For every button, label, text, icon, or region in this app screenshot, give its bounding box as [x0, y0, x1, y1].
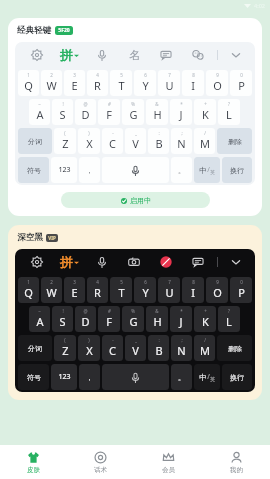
button[interactable]: +: [194, 99, 216, 125]
button[interactable]: 中: [194, 364, 220, 390]
button[interactable]: 7: [158, 277, 180, 303]
button[interactable]: &: [146, 306, 168, 332]
button[interactable]: 删除: [217, 335, 252, 361]
staticText: A: [36, 314, 44, 329]
button[interactable]: 中: [194, 157, 220, 183]
button[interactable]: Voice input: [86, 249, 118, 275]
button[interactable]: %: [122, 306, 144, 332]
button[interactable]: 。: [171, 364, 192, 390]
button[interactable]: ~: [29, 99, 50, 125]
button[interactable]: 我的: [202, 445, 270, 479]
button[interactable]: 8: [182, 277, 204, 303]
button[interactable]: 4: [87, 70, 108, 96]
button[interactable]: 5: [110, 277, 132, 303]
button[interactable]: (: [54, 128, 76, 154]
button[interactable]: ?: [218, 306, 240, 332]
button[interactable]: -: [102, 335, 123, 361]
button[interactable]: 4: [87, 277, 108, 303]
button[interactable]: 话术: [67, 445, 134, 479]
staticText: Y: [142, 78, 149, 93]
button[interactable]: 1: [18, 70, 39, 96]
button[interactable]: 1: [18, 277, 39, 303]
button[interactable]: #: [98, 99, 120, 125]
button[interactable]: ，: [79, 364, 100, 390]
button[interactable]: Handwriting: [118, 42, 150, 68]
button[interactable]: 换行: [222, 364, 252, 390]
button[interactable]: 。: [171, 157, 192, 183]
button[interactable]: Messages: [150, 42, 182, 68]
button[interactable]: ): [78, 128, 100, 154]
button[interactable]: 2: [41, 70, 62, 96]
button[interactable]: @: [75, 306, 96, 332]
button[interactable]: 删除: [217, 128, 252, 154]
button[interactable]: 3: [64, 277, 85, 303]
button[interactable]: 会员: [134, 445, 202, 479]
staticText: /: [204, 130, 206, 136]
button[interactable]: /: [194, 128, 215, 154]
button[interactable]: ?: [218, 99, 240, 125]
button[interactable]: 分词: [18, 335, 52, 361]
button[interactable]: 8: [182, 70, 204, 96]
button[interactable]: -: [102, 128, 123, 154]
button[interactable]: 123: [51, 157, 77, 183]
button[interactable]: *: [170, 99, 192, 125]
button[interactable]: &: [146, 99, 168, 125]
button[interactable]: #: [98, 306, 120, 332]
button[interactable]: _: [125, 335, 146, 361]
button[interactable]: 9: [206, 277, 228, 303]
staticText: ~: [38, 101, 41, 107]
button[interactable]: 分词: [18, 128, 52, 154]
button[interactable]: 皮肤: [0, 445, 67, 479]
button[interactable]: !: [52, 306, 73, 332]
button[interactable]: 6: [134, 70, 156, 96]
button[interactable]: ~: [29, 306, 50, 332]
button[interactable]: *: [170, 306, 192, 332]
button[interactable]: 2: [41, 277, 62, 303]
button[interactable]: 经典轻键: [8, 18, 262, 216]
button[interactable]: 123: [51, 364, 77, 390]
staticText: N: [177, 136, 186, 151]
button[interactable]: 3: [64, 70, 85, 96]
button[interactable]: :: [148, 335, 169, 361]
button[interactable]: Space / voice: [102, 157, 169, 183]
button[interactable]: Stickers: [150, 249, 182, 275]
button[interactable]: 0: [230, 277, 252, 303]
button[interactable]: (: [54, 335, 76, 361]
button[interactable]: ): [78, 335, 100, 361]
button[interactable]: 符号: [18, 157, 49, 183]
button[interactable]: 拼: [53, 249, 86, 275]
button[interactable]: Settings: [20, 42, 53, 68]
button[interactable]: 6: [134, 277, 156, 303]
staticText: ，: [86, 373, 93, 382]
button[interactable]: %: [122, 99, 144, 125]
staticText: 分词: [28, 137, 42, 146]
button[interactable]: 7: [158, 70, 180, 96]
button[interactable]: /: [194, 335, 215, 361]
button[interactable]: :: [148, 128, 169, 154]
button[interactable]: Voice input: [86, 42, 118, 68]
button[interactable]: 0: [230, 70, 252, 96]
staticText: L: [226, 107, 232, 122]
button[interactable]: 5: [110, 70, 132, 96]
button[interactable]: +: [194, 306, 216, 332]
button[interactable]: ;: [171, 128, 192, 154]
button[interactable]: Collapse keyboard: [221, 42, 250, 68]
button[interactable]: ;: [171, 335, 192, 361]
button[interactable]: WeChat: [182, 42, 214, 68]
button[interactable]: 换行: [222, 157, 252, 183]
button[interactable]: 深空黑: [8, 225, 262, 400]
button[interactable]: 9: [206, 70, 228, 96]
button[interactable]: !: [52, 99, 73, 125]
staticText: D: [81, 314, 90, 329]
button[interactable]: Settings: [20, 249, 53, 275]
button[interactable]: 启用中: [61, 192, 210, 208]
button[interactable]: ，: [79, 157, 100, 183]
button[interactable]: Camera: [118, 249, 150, 275]
button[interactable]: 符号: [18, 364, 49, 390]
button[interactable]: Collapse keyboard: [221, 249, 250, 275]
button[interactable]: 拼: [53, 42, 86, 68]
button[interactable]: Space / voice: [102, 364, 169, 390]
button[interactable]: Messages: [182, 249, 214, 275]
button[interactable]: @: [75, 99, 96, 125]
button[interactable]: _: [125, 128, 146, 154]
